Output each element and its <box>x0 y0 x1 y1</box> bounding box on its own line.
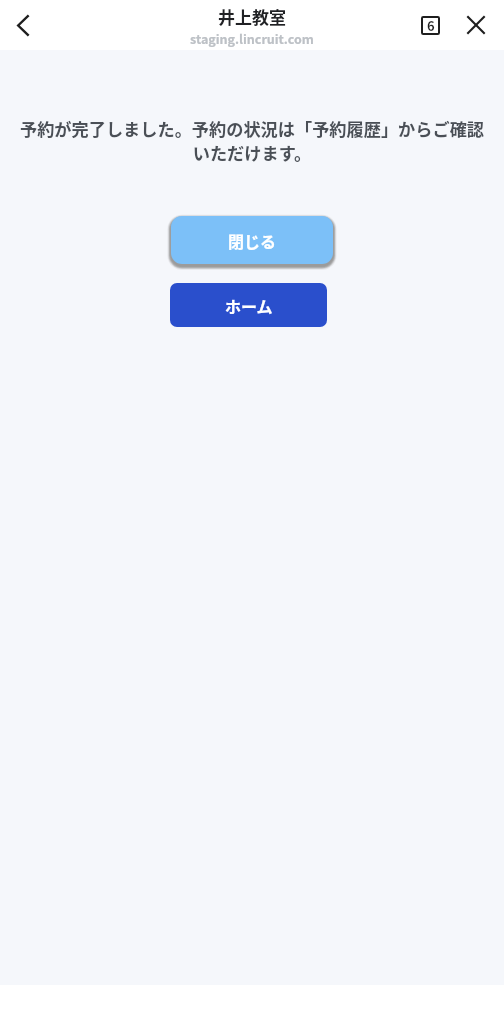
button[interactable]: 閉じる <box>171 216 333 264</box>
button[interactable]: Open tabs, 6 <box>408 3 452 47</box>
staticText: staging.lincruit.com <box>190 29 314 47</box>
staticText: 閉じる <box>228 229 277 252</box>
button[interactable]: Back <box>1 3 45 47</box>
staticText: 井上教室 <box>218 4 286 29</box>
button[interactable]: Close <box>454 3 498 47</box>
staticText: ホーム <box>225 294 273 317</box>
staticText: 予約が完了しました。予約の状況は「予約履歴」からご確認いただけます。 <box>14 116 490 165</box>
staticText: 6 <box>427 16 435 35</box>
button[interactable]: ホーム <box>170 283 327 327</box>
